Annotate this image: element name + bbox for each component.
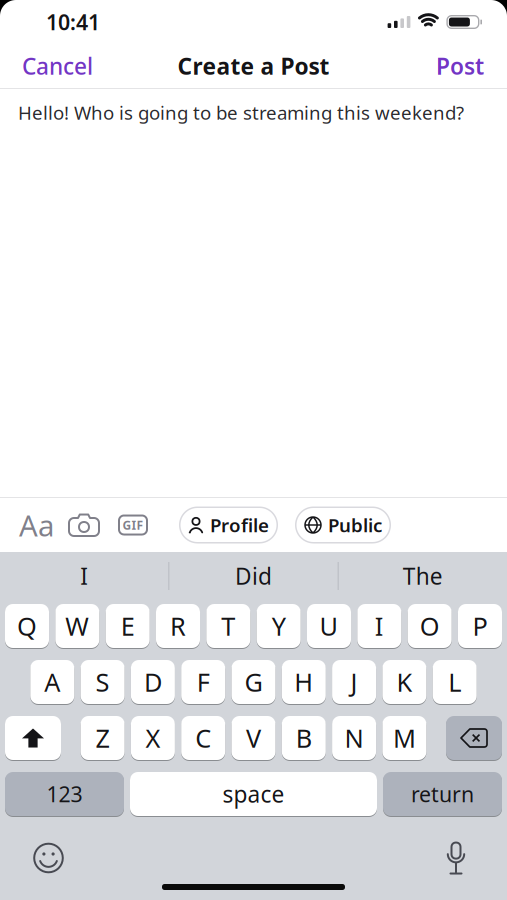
button[interactable]: Z bbox=[81, 716, 125, 760]
staticText: Public bbox=[328, 513, 382, 537]
button[interactable]: Profile bbox=[179, 506, 278, 543]
button[interactable]: Emoji bbox=[33, 842, 64, 873]
staticText: Did bbox=[235, 561, 272, 591]
staticText: B bbox=[296, 721, 312, 755]
staticText: 123 bbox=[46, 780, 82, 808]
staticText: E bbox=[121, 609, 135, 643]
staticText: GIF bbox=[122, 517, 143, 533]
button[interactable]: Delete bbox=[446, 716, 502, 760]
staticText: R bbox=[170, 609, 186, 643]
button[interactable]: Text formatting bbox=[19, 505, 54, 544]
staticText: space bbox=[222, 779, 284, 809]
staticText: D bbox=[144, 665, 162, 699]
button[interactable]: O bbox=[408, 604, 452, 648]
button[interactable]: Attach GIF bbox=[118, 514, 148, 535]
button[interactable]: I bbox=[357, 604, 401, 648]
button[interactable]: N bbox=[332, 716, 376, 760]
button[interactable]: C bbox=[181, 716, 225, 760]
staticText: Post bbox=[436, 51, 484, 81]
staticText: T bbox=[221, 609, 235, 643]
staticText: L bbox=[448, 665, 461, 699]
button[interactable]: I bbox=[0, 561, 168, 591]
staticText: The bbox=[403, 561, 443, 591]
button[interactable]: F bbox=[181, 660, 225, 704]
staticText: Aa bbox=[19, 505, 54, 544]
button[interactable]: Q bbox=[5, 604, 49, 648]
staticText: H bbox=[294, 665, 313, 699]
staticText: S bbox=[96, 665, 110, 699]
staticText: A bbox=[44, 665, 60, 699]
button[interactable]: R bbox=[156, 604, 200, 648]
button[interactable]: T bbox=[206, 604, 250, 648]
button[interactable]: D bbox=[131, 660, 175, 704]
staticText: Y bbox=[272, 609, 286, 643]
button[interactable]: A bbox=[30, 660, 74, 704]
button[interactable]: U bbox=[307, 604, 351, 648]
button[interactable]: 123 bbox=[5, 772, 124, 816]
staticText: P bbox=[472, 609, 487, 643]
staticText: I bbox=[80, 561, 88, 591]
staticText: Q bbox=[17, 609, 37, 643]
button[interactable]: Attach media bbox=[69, 514, 99, 536]
staticText: U bbox=[319, 609, 338, 643]
button[interactable]: Y bbox=[257, 604, 301, 648]
button[interactable]: V bbox=[231, 716, 275, 760]
staticText: M bbox=[393, 721, 416, 755]
button[interactable]: The bbox=[339, 561, 507, 591]
staticText: Create a Post bbox=[177, 51, 329, 81]
button[interactable]: Shift bbox=[5, 716, 61, 760]
button[interactable]: G bbox=[231, 660, 275, 704]
button[interactable]: Post bbox=[436, 51, 507, 81]
staticText: V bbox=[246, 721, 261, 755]
staticText: 10:41 bbox=[46, 8, 100, 36]
button[interactable]: M bbox=[382, 716, 426, 760]
staticText: return bbox=[411, 780, 474, 808]
button[interactable]: L bbox=[433, 660, 477, 704]
staticText: Hello! Who is going to be streaming this… bbox=[18, 100, 464, 125]
staticText: Profile bbox=[210, 513, 269, 537]
staticText: K bbox=[396, 665, 412, 699]
staticText: G bbox=[244, 665, 262, 699]
staticText: X bbox=[145, 721, 160, 755]
staticText: N bbox=[345, 721, 364, 755]
staticText: O bbox=[420, 609, 440, 643]
button[interactable]: space bbox=[130, 772, 377, 816]
button[interactable]: K bbox=[382, 660, 426, 704]
staticText: Z bbox=[96, 721, 110, 755]
button[interactable]: W bbox=[55, 604, 99, 648]
staticText: W bbox=[65, 609, 89, 643]
button[interactable]: J bbox=[332, 660, 376, 704]
button[interactable]: X bbox=[131, 716, 175, 760]
staticText: J bbox=[351, 665, 358, 699]
button[interactable]: Did bbox=[169, 561, 338, 591]
button[interactable]: P bbox=[458, 604, 502, 648]
button[interactable]: H bbox=[282, 660, 326, 704]
staticText: I bbox=[375, 609, 384, 643]
button[interactable]: Public bbox=[295, 506, 391, 543]
button[interactable]: Cancel bbox=[0, 51, 93, 81]
staticText: Cancel bbox=[22, 51, 93, 81]
button[interactable]: return bbox=[383, 772, 502, 816]
staticText: F bbox=[197, 665, 210, 699]
button[interactable]: B bbox=[282, 716, 326, 760]
button[interactable]: S bbox=[81, 660, 125, 704]
button[interactable]: E bbox=[106, 604, 150, 648]
button[interactable]: Dictation bbox=[445, 841, 467, 874]
staticText: C bbox=[195, 721, 211, 755]
